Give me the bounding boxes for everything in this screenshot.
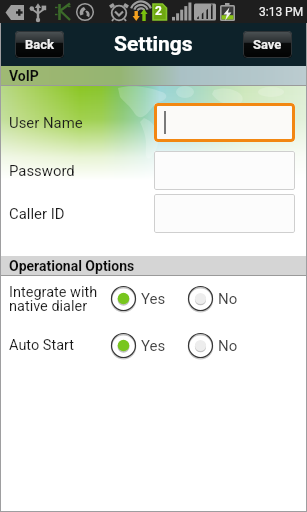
staticText: Yes: [141, 337, 166, 355]
staticText: Auto Start: [9, 337, 110, 354]
staticText: Password: [9, 162, 154, 179]
button[interactable]: [154, 151, 295, 190]
staticText: VoIP: [9, 68, 39, 84]
staticText: Save: [253, 37, 282, 52]
button[interactable]: Back: [15, 31, 64, 58]
staticText: 2: [155, 4, 162, 18]
button[interactable]: Save: [243, 31, 292, 58]
staticText: No: [218, 337, 238, 355]
button[interactable]: [154, 103, 295, 142]
button[interactable]: No: [187, 332, 238, 359]
button[interactable]: Yes: [110, 332, 166, 359]
button[interactable]: [154, 194, 295, 233]
staticText: Yes: [141, 290, 166, 308]
staticText: Back: [25, 37, 54, 52]
staticText: 3:13 PM: [259, 5, 304, 19]
staticText: User Name: [9, 114, 154, 131]
button[interactable]: No: [187, 285, 238, 312]
staticText: Settings: [114, 32, 193, 57]
staticText: No: [218, 290, 238, 308]
button[interactable]: Yes: [110, 285, 166, 312]
staticText: Operational Options: [9, 258, 135, 274]
staticText: Integrate with native dialer: [9, 284, 110, 312]
staticText: Caller ID: [9, 205, 154, 222]
